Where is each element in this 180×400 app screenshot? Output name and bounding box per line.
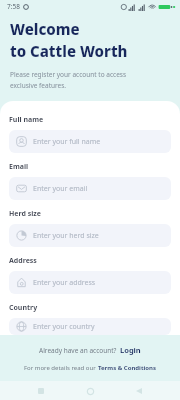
staticText: Full name bbox=[9, 115, 44, 125]
staticText: For more details read our bbox=[24, 364, 98, 372]
staticText: Country bbox=[9, 303, 38, 313]
button[interactable]: Enter your email bbox=[9, 177, 171, 200]
staticText: Herd size bbox=[9, 209, 42, 219]
staticText: Already have an account? bbox=[39, 346, 120, 355]
staticText: Enter your address bbox=[33, 278, 96, 288]
button[interactable]: Home bbox=[82, 383, 98, 399]
staticText: 7:58 bbox=[7, 2, 20, 11]
button[interactable]: Enter your full name bbox=[9, 130, 171, 153]
button[interactable]: Enter your herd size bbox=[9, 224, 171, 247]
staticText: Email bbox=[9, 162, 29, 172]
staticText: Enter your full name bbox=[33, 137, 101, 147]
staticText: Enter your email bbox=[33, 184, 88, 194]
button[interactable]: Already have an account? bbox=[35, 344, 145, 356]
staticText: Enter your country bbox=[33, 322, 95, 332]
button[interactable]: Enter your address bbox=[9, 271, 171, 294]
staticText: exclusive features. bbox=[10, 81, 67, 90]
staticText: Enter your herd size bbox=[33, 231, 99, 241]
staticText: to Cattle Worth bbox=[10, 41, 128, 61]
button[interactable]: For more details read our bbox=[20, 363, 160, 373]
button[interactable]: Enter your country bbox=[9, 318, 171, 335]
staticText: Welcome bbox=[10, 19, 80, 39]
button[interactable]: Recents bbox=[33, 383, 49, 399]
staticText: Terms & Conditions bbox=[98, 364, 156, 372]
staticText: Please register your account to access bbox=[10, 70, 127, 79]
button[interactable]: Back bbox=[131, 383, 147, 399]
staticText: Login bbox=[120, 345, 141, 355]
staticText: Address bbox=[9, 256, 37, 266]
